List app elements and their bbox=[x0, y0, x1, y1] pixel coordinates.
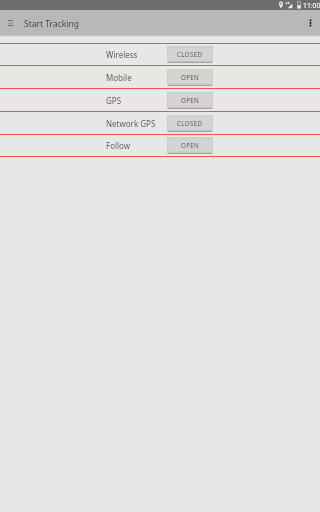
button[interactable]: CLOSED bbox=[167, 115, 213, 132]
staticText: Network GPS bbox=[106, 118, 156, 129]
staticText: OPEN bbox=[181, 141, 200, 149]
staticText: OPEN bbox=[181, 96, 200, 104]
staticText: OPEN bbox=[181, 73, 200, 81]
button[interactable]: OPEN bbox=[167, 137, 213, 154]
staticText: CLOSED bbox=[177, 119, 203, 127]
button[interactable]: Wireless bbox=[0, 44, 320, 65]
button[interactable]: Open navigation drawer bbox=[0, 10, 20, 35]
button[interactable]: GPS bbox=[0, 89, 320, 111]
button[interactable]: Follow bbox=[0, 135, 320, 156]
staticText: GPS bbox=[106, 95, 122, 106]
staticText: Follow bbox=[106, 140, 131, 151]
staticText: Mobile bbox=[106, 72, 132, 83]
button[interactable]: OPEN bbox=[167, 92, 213, 109]
staticText: Wireless bbox=[106, 49, 138, 60]
button[interactable]: CLOSED bbox=[167, 46, 213, 63]
button[interactable]: Network GPS bbox=[0, 112, 320, 134]
button[interactable]: More options bbox=[300, 10, 320, 35]
staticText: Start Tracking bbox=[24, 18, 79, 30]
staticText: 11:00 bbox=[303, 1, 320, 10]
button[interactable]: Mobile bbox=[0, 66, 320, 88]
staticText: CLOSED bbox=[177, 50, 203, 58]
button[interactable]: OPEN bbox=[167, 69, 213, 86]
